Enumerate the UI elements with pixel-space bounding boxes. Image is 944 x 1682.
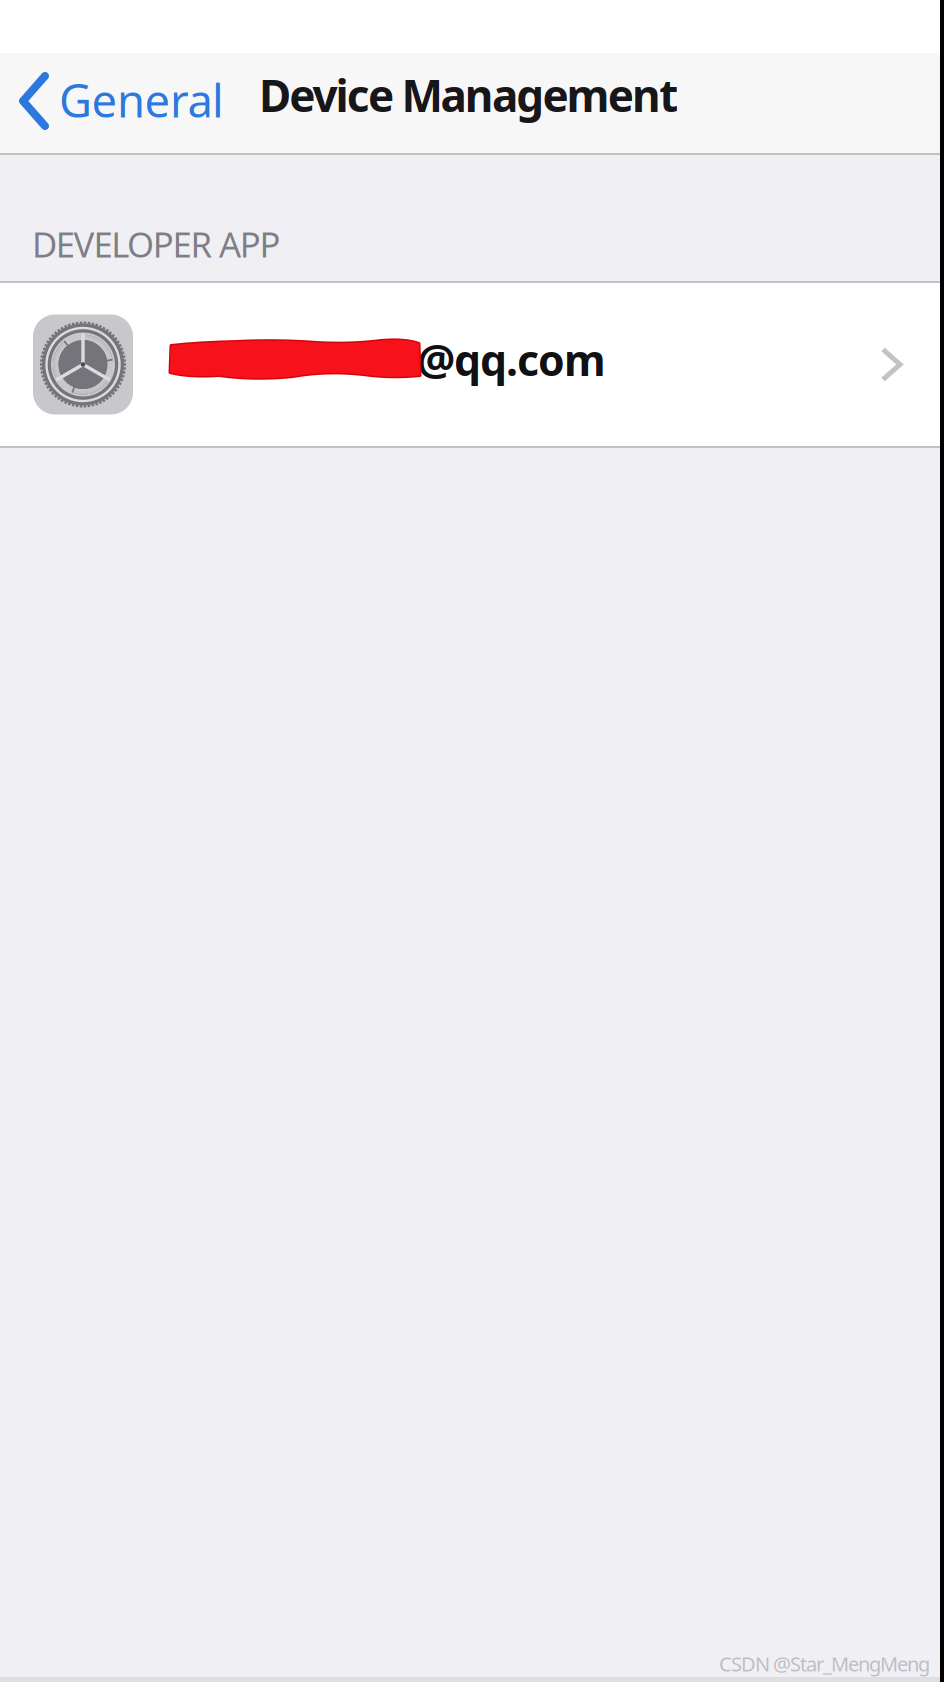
staticText: Device Management	[259, 66, 678, 124]
staticText: DEVELOPER APP	[32, 221, 281, 267]
staticText: General	[59, 70, 224, 130]
staticText: @qq.com	[417, 331, 606, 388]
button[interactable]: @qq.com	[0, 281, 944, 448]
button[interactable]: General	[0, 53, 238, 155]
staticText: CSDN @Star_MengMeng	[719, 1650, 930, 1677]
